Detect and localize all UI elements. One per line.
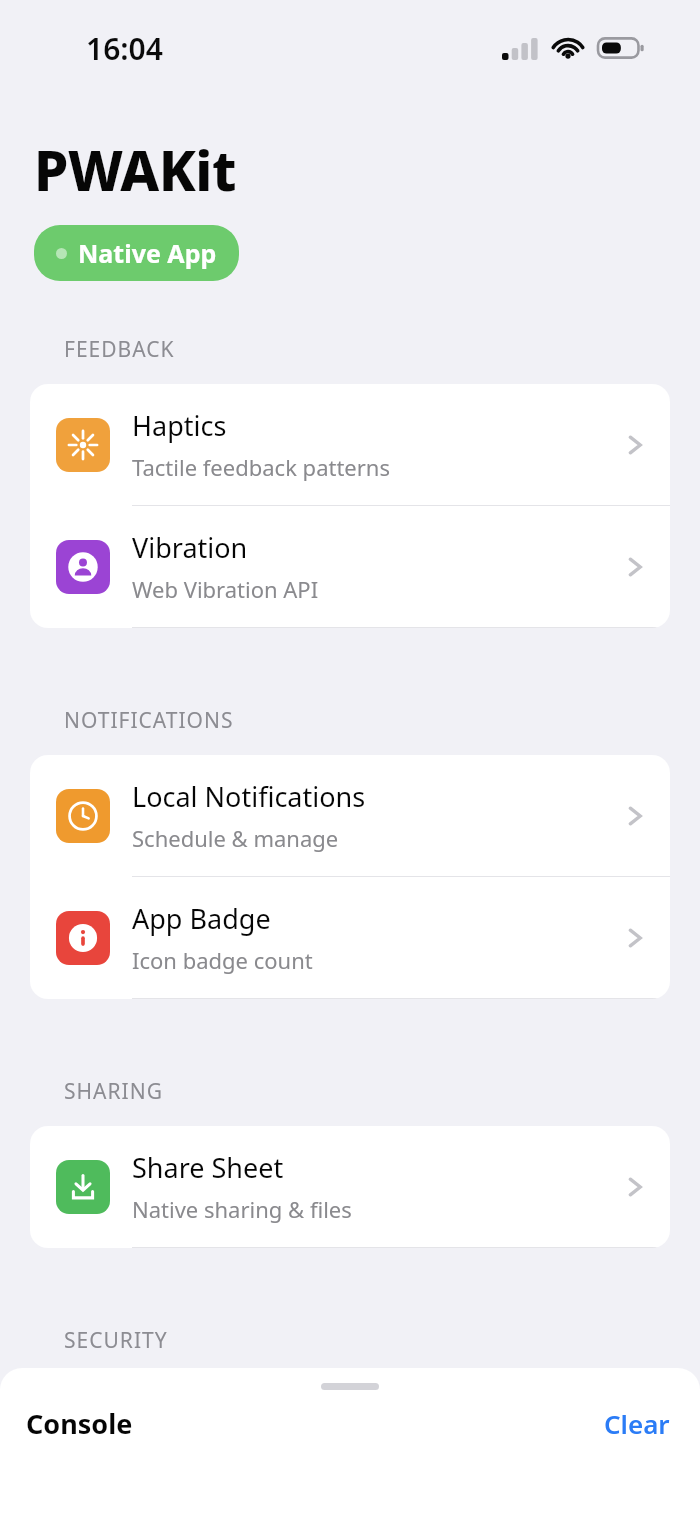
staticText: SHARING <box>64 1077 163 1106</box>
staticText: Haptics <box>132 407 227 444</box>
button[interactable]: Share Sheet <box>30 1126 670 1247</box>
staticText: Local Notifications <box>132 778 366 815</box>
staticText: Icon badge count <box>132 945 313 975</box>
button[interactable]: Local Notifications <box>30 755 670 876</box>
button[interactable]: Haptics <box>30 384 670 505</box>
staticText: FEEDBACK <box>64 335 175 364</box>
staticText: Web Vibration API <box>132 574 319 604</box>
button[interactable]: Native App <box>34 225 239 281</box>
staticText: Clear <box>604 1406 670 1441</box>
button[interactable]: Vibration <box>30 506 670 627</box>
staticText: Vibration <box>132 529 248 566</box>
staticText: Console <box>26 1405 133 1442</box>
staticText: App Badge <box>132 900 271 937</box>
button[interactable]: Clear <box>600 1402 674 1445</box>
staticText: Share Sheet <box>132 1149 284 1186</box>
staticText: Tactile feedback patterns <box>132 452 390 482</box>
staticText: 16:04 <box>86 28 163 69</box>
staticText: SECURITY <box>64 1326 168 1355</box>
staticText: PWAKit <box>34 132 236 207</box>
staticText: Native App <box>78 236 217 270</box>
staticText: Schedule & manage <box>132 823 339 853</box>
button[interactable]: Biometrics <box>30 1375 670 1496</box>
staticText: NOTIFICATIONS <box>64 706 234 735</box>
staticText: Native sharing & files <box>132 1194 352 1224</box>
button[interactable]: App Badge <box>30 877 670 998</box>
